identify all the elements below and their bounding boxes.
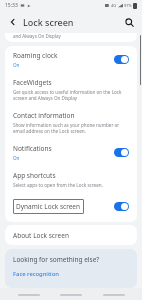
staticText: Select apps to open from the Lock screen…	[13, 182, 103, 188]
button[interactable]: Face recognition	[13, 270, 59, 278]
button[interactable]: Dynamic Lock screen	[5, 193, 137, 219]
staticText: 15:33	[5, 2, 18, 9]
staticText: Looking for something else?	[13, 255, 100, 264]
staticText: On	[13, 155, 20, 161]
staticText: Notifications	[13, 144, 52, 153]
staticText: Lock screen	[23, 16, 74, 28]
staticText: Dynamic Lock screen	[16, 202, 81, 211]
button[interactable]: Toggle on	[114, 202, 129, 211]
button[interactable]: About Lock screen	[5, 225, 137, 245]
staticText: About Lock screen	[13, 231, 69, 240]
staticText: Face recognition	[13, 270, 59, 278]
button[interactable]: FaceWidgets	[5, 73, 137, 106]
staticText: Roaming clock	[13, 51, 58, 60]
button[interactable]: App shortcuts	[5, 166, 137, 193]
staticText: 97%	[124, 3, 132, 8]
staticText: Show information such as your phone numb…	[13, 122, 129, 134]
button[interactable]: Search	[122, 15, 136, 29]
button[interactable]: Back	[6, 15, 20, 29]
button[interactable]: Recents	[15, 289, 43, 300]
staticText: On	[13, 62, 20, 68]
staticText: FaceWidgets	[13, 78, 52, 87]
button[interactable]: Roaming clock	[5, 46, 137, 73]
button[interactable]: Home	[57, 289, 85, 300]
staticText: Get quick access to useful information o…	[13, 89, 129, 101]
button[interactable]: Back	[100, 289, 128, 300]
staticText: and Always On Display	[13, 33, 61, 39]
button[interactable]: and Always On Display	[5, 33, 137, 42]
staticText: App shortcuts	[13, 171, 56, 180]
button[interactable]: Toggle on	[114, 148, 129, 157]
button[interactable]: Notifications	[5, 139, 137, 166]
staticText: 4G	[111, 3, 117, 8]
staticText: Contact information	[13, 111, 75, 120]
button[interactable]: Contact information	[5, 106, 137, 139]
button[interactable]: Toggle on	[114, 55, 129, 64]
